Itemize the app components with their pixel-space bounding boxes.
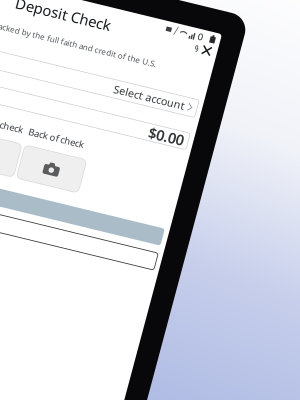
- staticText: Back of check: [155, 134, 212, 146]
- staticText: Check images: [8, 138, 79, 152]
- staticText: Deposit Check: [109, 8, 207, 28]
- button[interactable]: Submit Deposit: [8, 203, 300, 220]
- staticText: Check History: [15, 230, 84, 244]
- staticText: Amount: [8, 105, 49, 120]
- staticText: Funds are insured and backed by the full…: [8, 39, 261, 61]
- staticText: Select account: [226, 71, 299, 86]
- staticText: Front of check: [89, 134, 150, 146]
- staticText: Deposit to: [8, 72, 60, 86]
- button[interactable]: $0.00: [89, 103, 300, 122]
- button[interactable]: Capture back of check: [155, 154, 219, 188]
- button[interactable]: Select account: [89, 69, 300, 88]
- staticText: Submit Deposit: [15, 204, 94, 218]
- button[interactable]: Check History: [8, 228, 300, 245]
